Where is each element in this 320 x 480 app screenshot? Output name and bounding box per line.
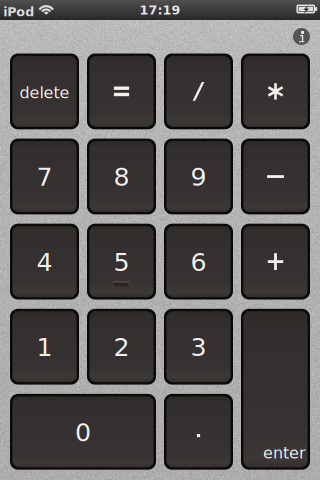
- button[interactable]: 6: [164, 224, 233, 299]
- staticText: 17:19: [139, 3, 180, 17]
- button[interactable]: 1: [10, 309, 79, 385]
- button[interactable]: 8: [87, 139, 156, 214]
- button[interactable]: 5: [87, 224, 156, 299]
- button[interactable]: [241, 139, 310, 214]
- button[interactable]: [87, 53, 156, 129]
- button[interactable]: enter: [241, 309, 310, 470]
- staticText: 8: [113, 162, 129, 192]
- button[interactable]: [164, 53, 233, 129]
- staticText: 6: [190, 247, 206, 277]
- button[interactable]: [241, 53, 310, 129]
- button[interactable]: 7: [10, 139, 79, 214]
- staticText: 2: [113, 333, 129, 362]
- button[interactable]: 4: [10, 224, 79, 299]
- button[interactable]: 3: [164, 309, 233, 385]
- staticText: 5: [113, 247, 129, 277]
- button[interactable]: Info: [288, 23, 314, 49]
- staticText: 7: [36, 162, 52, 192]
- staticText: 4: [36, 247, 52, 277]
- staticText: enter: [263, 444, 306, 462]
- button[interactable]: [164, 394, 233, 470]
- button[interactable]: 0: [10, 394, 156, 470]
- button[interactable]: 9: [164, 139, 233, 214]
- staticText: 1: [36, 333, 52, 362]
- staticText: 9: [190, 162, 206, 192]
- button[interactable]: [241, 224, 310, 299]
- staticText: delete: [19, 83, 69, 102]
- button[interactable]: delete: [10, 53, 79, 129]
- button[interactable]: 2: [87, 309, 156, 385]
- staticText: iPod: [3, 5, 34, 19]
- staticText: 3: [190, 333, 206, 362]
- staticText: 0: [75, 418, 91, 447]
